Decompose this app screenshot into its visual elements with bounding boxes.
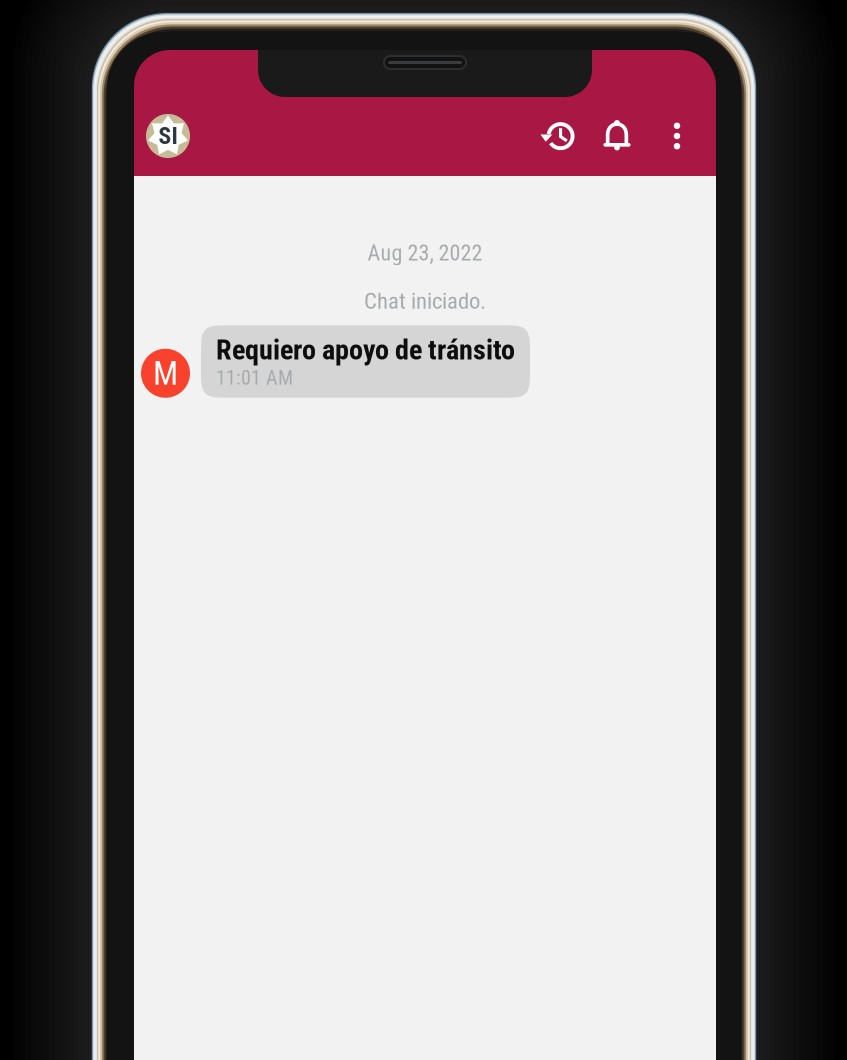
button[interactable]: Notifications [586, 105, 648, 167]
staticText: M [153, 354, 178, 393]
staticText: Aug 23, 2022 [367, 240, 482, 266]
staticText: SI [158, 122, 177, 150]
button[interactable]: Home [134, 102, 202, 170]
button[interactable]: History [527, 105, 589, 167]
staticText: 11:01 AM [216, 366, 293, 390]
button[interactable]: More options [651, 105, 703, 167]
staticText: Chat iniciado. [364, 288, 486, 314]
staticText: Requiero apoyo de tránsito [216, 333, 515, 366]
